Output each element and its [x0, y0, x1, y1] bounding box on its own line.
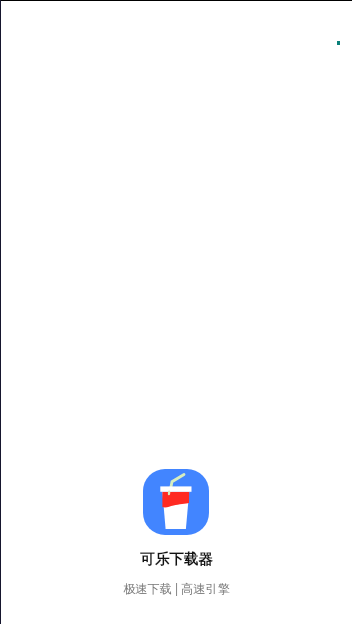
button[interactable]: Cola Downloader app icon	[143, 469, 209, 535]
staticText: 极速下载 | 高速引擎	[123, 580, 230, 597]
staticText: 可乐下载器	[140, 550, 213, 568]
